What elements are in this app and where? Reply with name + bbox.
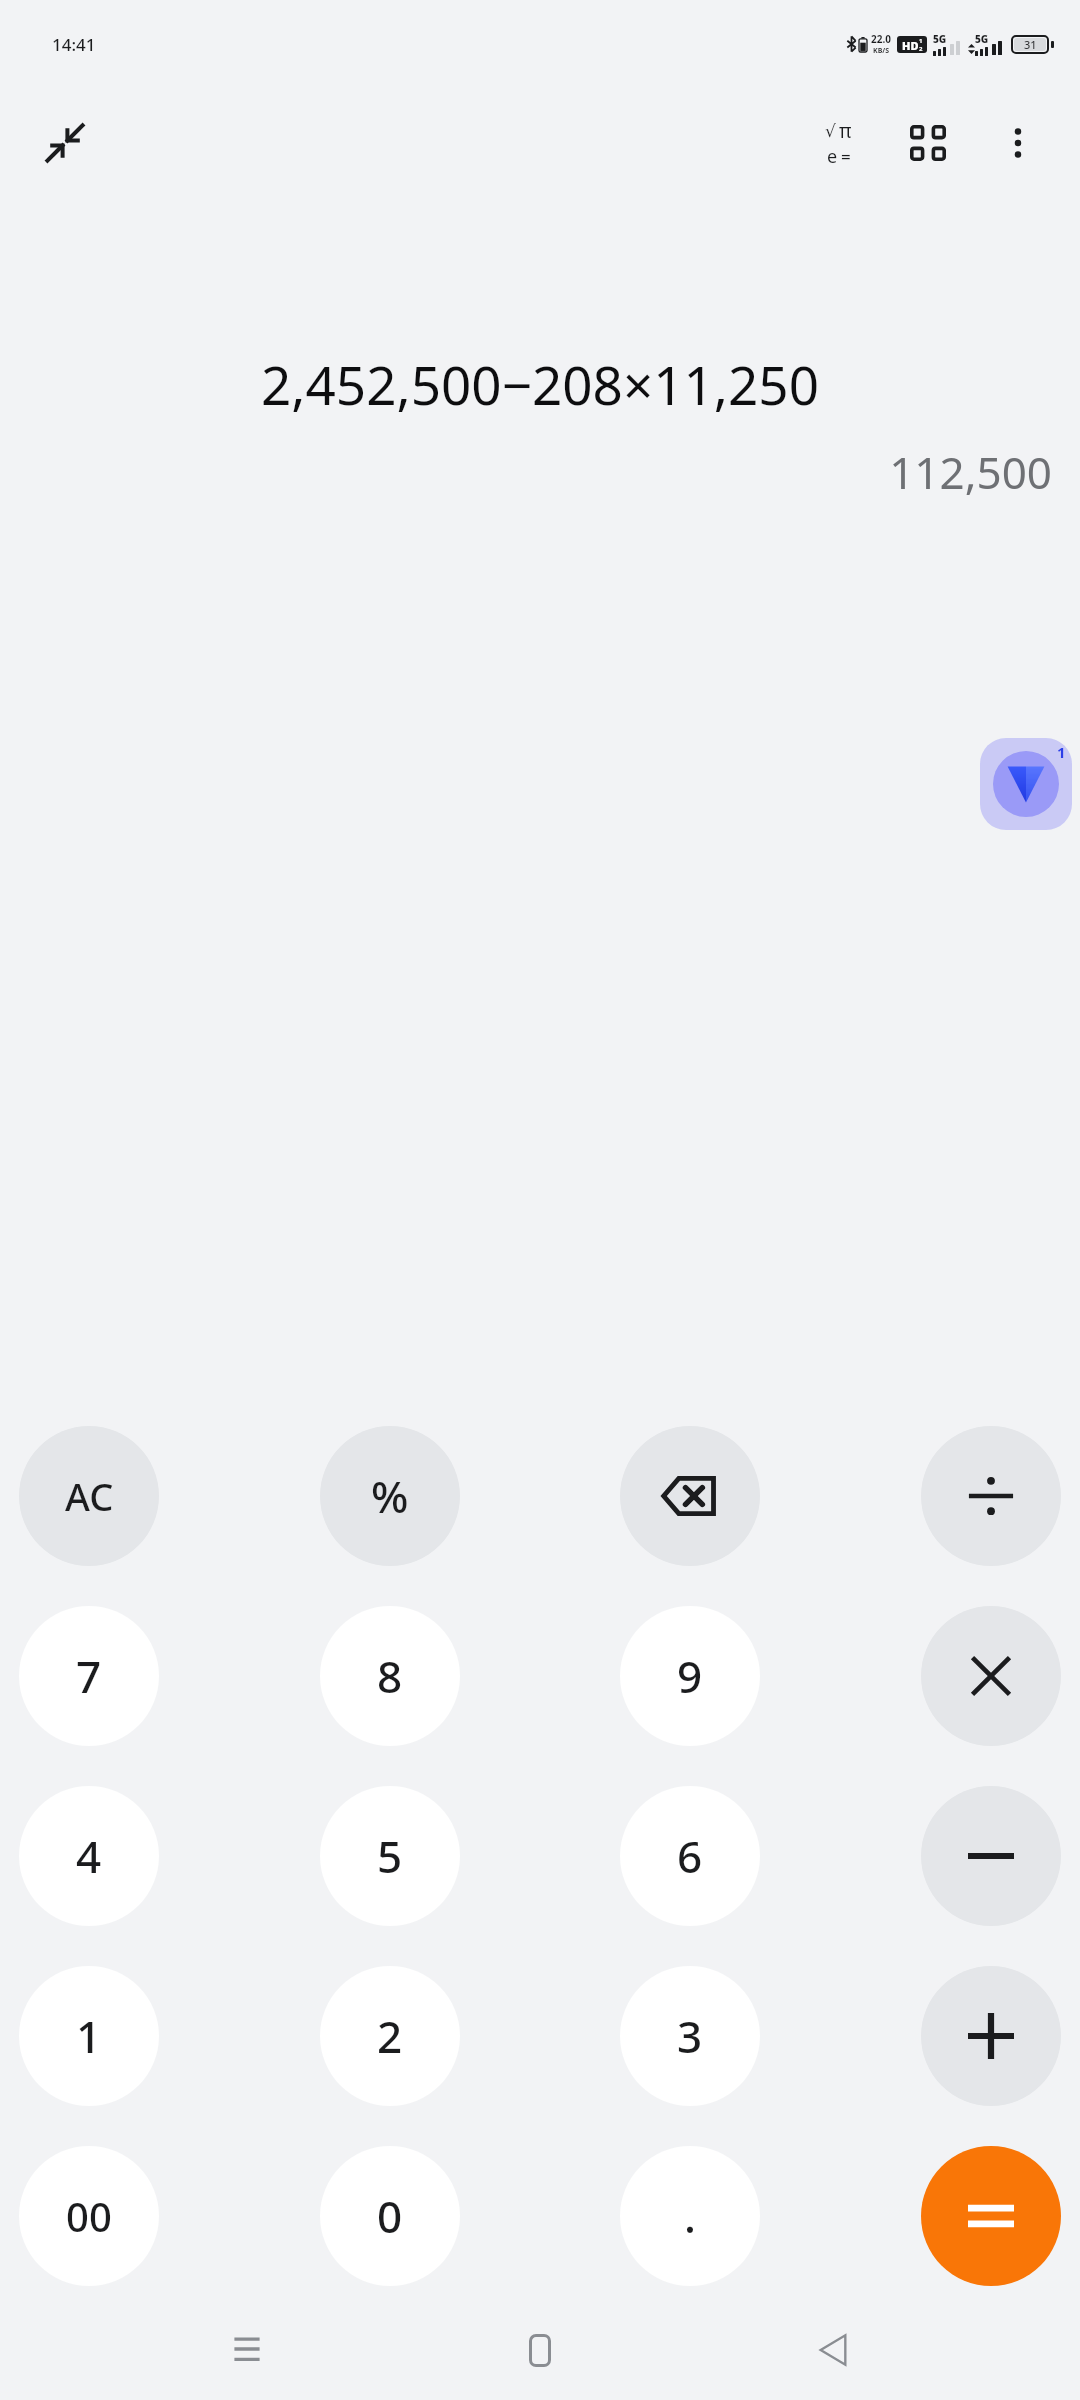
staticText: 00 (66, 2189, 112, 2243)
button[interactable]: Backspace (620, 1426, 760, 1566)
staticText: 2 (919, 45, 923, 53)
button[interactable]: 2 (320, 1966, 460, 2106)
button[interactable]: 00 (19, 2146, 159, 2286)
button[interactable]: More options (978, 103, 1058, 183)
staticText: 4 (76, 1826, 102, 1886)
staticText: 6 (677, 1826, 703, 1886)
button[interactable]: . (620, 2146, 760, 2286)
button[interactable]: 1 (19, 1966, 159, 2106)
staticText: = (841, 145, 851, 168)
staticText: 0 (377, 2186, 403, 2246)
button[interactable]: 8 (320, 1606, 460, 1746)
staticText: 14:41 (52, 33, 96, 56)
staticText: KB/S (873, 46, 890, 56)
staticText: 2 (377, 2006, 403, 2066)
button[interactable]: AC (19, 1426, 159, 1566)
staticText: HD (902, 38, 919, 53)
button[interactable]: Collapse (26, 104, 104, 182)
button[interactable]: Back (787, 2314, 879, 2386)
staticText: 5G (933, 32, 947, 46)
button[interactable]: 7 (19, 1606, 159, 1746)
staticText: 2,452,500−208×11,250 (28, 348, 1052, 420)
button[interactable]: % (320, 1426, 460, 1566)
staticText: 5 (377, 1826, 403, 1886)
button[interactable]: 4 (19, 1786, 159, 1926)
staticText: % (371, 1466, 409, 1526)
button[interactable]: 6 (620, 1786, 760, 1926)
staticText: e (827, 144, 838, 169)
staticText: 31 (1024, 37, 1037, 52)
button[interactable]: Divide (921, 1426, 1061, 1566)
staticText: 1 (76, 2006, 102, 2066)
button[interactable]: Floating app bubble (980, 738, 1072, 830)
button[interactable]: 9 (620, 1606, 760, 1746)
staticText: 3 (677, 2006, 703, 2066)
staticText: 8 (377, 1646, 403, 1706)
button[interactable]: Recents (201, 2314, 293, 2386)
button[interactable]: Home (494, 2314, 586, 2386)
staticText: 22.0 (871, 32, 891, 46)
staticText: 9 (677, 1646, 703, 1706)
staticText: 1 (919, 37, 923, 45)
button[interactable]: Equals (921, 2146, 1061, 2286)
staticText: 7 (76, 1646, 102, 1706)
button[interactable]: Plus (921, 1966, 1061, 2106)
staticText: 5G (975, 32, 989, 46)
button[interactable]: Minus (921, 1786, 1061, 1926)
staticText: √ (825, 121, 836, 141)
staticText: π (839, 118, 852, 144)
staticText: AC (65, 1470, 114, 1522)
staticText: 1 (1057, 742, 1066, 762)
button[interactable]: Scientific mode (798, 103, 878, 183)
staticText: 112,500 (28, 442, 1052, 502)
button[interactable]: 5 (320, 1786, 460, 1926)
button[interactable]: 3 (620, 1966, 760, 2106)
staticText: . (684, 2186, 696, 2246)
button[interactable]: Keypad layout (888, 103, 968, 183)
button[interactable]: Multiply (921, 1606, 1061, 1746)
button[interactable]: 0 (320, 2146, 460, 2286)
